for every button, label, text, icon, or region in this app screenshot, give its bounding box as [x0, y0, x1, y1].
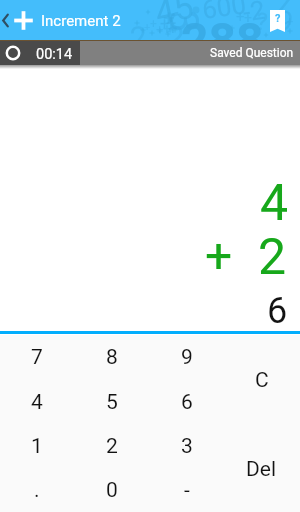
staticText: +: [205, 227, 233, 283]
button[interactable]: -: [149, 468, 224, 512]
staticText: 6: [181, 390, 193, 415]
staticText: 7: [31, 345, 43, 370]
staticText: 4: [260, 174, 289, 233]
staticText: 1: [31, 434, 43, 459]
staticText: 0: [106, 478, 118, 503]
button[interactable]: 9: [149, 335, 224, 380]
staticText: 8: [106, 345, 118, 370]
staticText: ?: [275, 12, 281, 25]
button[interactable]: 2: [74, 424, 149, 468]
staticText: 2: [106, 434, 118, 459]
button[interactable]: 5: [74, 380, 149, 424]
staticText: 6: [267, 290, 288, 332]
button[interactable]: 6: [149, 380, 224, 424]
button[interactable]: Saved questions: [270, 9, 300, 31]
button[interactable]: 0: [74, 468, 149, 512]
button[interactable]: 7: [0, 335, 74, 380]
button[interactable]: C: [224, 335, 300, 423]
staticText: Saved Question: [210, 46, 294, 60]
staticText: C: [255, 368, 269, 393]
staticText: 3: [181, 434, 193, 459]
other: Back: [2, 14, 9, 27]
staticText: 2: [258, 228, 287, 287]
staticText: .: [34, 478, 40, 503]
staticText: Increment 2: [41, 12, 121, 30]
button[interactable]: Saved Question: [202, 40, 300, 65]
button[interactable]: .: [0, 468, 74, 512]
button[interactable]: 4: [0, 380, 74, 424]
staticText: 4: [31, 390, 43, 415]
staticText: 9: [181, 345, 193, 370]
button[interactable]: 3: [149, 424, 224, 468]
other: Stop timer: [6, 46, 20, 60]
button[interactable]: Stop timer: [0, 40, 79, 65]
button[interactable]: Del: [224, 423, 300, 512]
staticText: Del: [246, 457, 277, 482]
button[interactable]: 1: [0, 424, 74, 468]
staticText: -: [184, 478, 190, 503]
button[interactable]: Back: [0, 10, 127, 31]
staticText: 00:14: [36, 46, 73, 63]
button[interactable]: 8: [74, 335, 149, 380]
staticText: 5: [106, 390, 118, 415]
